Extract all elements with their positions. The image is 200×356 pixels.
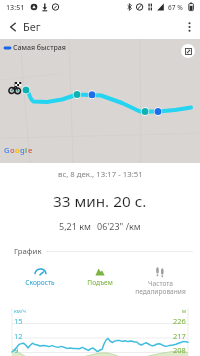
button[interactable]: More options bbox=[178, 16, 200, 38]
staticText: l bbox=[25, 145, 28, 155]
staticText: км/ч bbox=[14, 307, 26, 314]
staticText: 12 bbox=[14, 331, 23, 341]
button[interactable]: Expand map bbox=[181, 44, 195, 58]
staticText: 217 bbox=[173, 331, 186, 341]
staticText: 208 bbox=[173, 345, 186, 355]
staticText: G bbox=[4, 145, 10, 155]
button[interactable]: Самая быстрая bbox=[4, 43, 66, 53]
staticText: Самая быстрая bbox=[13, 43, 66, 53]
staticText: e bbox=[28, 145, 33, 155]
staticText: График bbox=[14, 246, 42, 257]
button[interactable]: Частота педалирования bbox=[130, 267, 190, 296]
staticText: Частота педалирования bbox=[135, 279, 186, 296]
button[interactable]: Подъем bbox=[70, 267, 130, 287]
staticText: Скорость bbox=[25, 278, 55, 287]
staticText: 5,21 км bbox=[59, 220, 91, 232]
staticText: 13:51 bbox=[6, 2, 25, 12]
staticText: 15 bbox=[14, 316, 23, 326]
staticText: Бег bbox=[23, 19, 41, 34]
staticText: 9 bbox=[14, 345, 19, 355]
button[interactable]: Скорость bbox=[10, 267, 70, 287]
staticText: 67 % bbox=[168, 3, 183, 12]
staticText: Подъем bbox=[87, 278, 113, 287]
staticText: м bbox=[182, 307, 186, 314]
button[interactable]: Back bbox=[0, 14, 46, 39]
staticText: o bbox=[10, 145, 15, 155]
staticText: 226 bbox=[173, 316, 186, 326]
staticText: g bbox=[20, 145, 25, 155]
staticText: 06'23" /км bbox=[97, 220, 141, 232]
staticText: o bbox=[15, 145, 20, 155]
staticText: вс, 8 дек., 13:17 - 13:51 bbox=[58, 169, 143, 180]
staticText: 33 мин. 20 с. bbox=[53, 191, 147, 212]
